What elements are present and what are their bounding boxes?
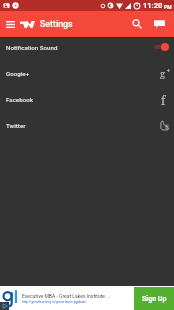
staticText: Facebook [6, 96, 33, 103]
button[interactable]: Sign Up [134, 287, 174, 310]
staticText: Settings [40, 19, 73, 29]
staticText: Google+ [6, 70, 30, 77]
staticText: http://greatlearning.in/great-lakes-pgpb… [22, 300, 86, 304]
staticText: Executive MBA - Great Lakes Institute ..… [22, 293, 111, 299]
button[interactable]: Notification Sound [0, 34, 174, 60]
button[interactable]: Executive MBA - Great Lakes Institute ..… [0, 286, 174, 310]
other: Ad choices [0, 302, 9, 310]
button[interactable]: Twitter [0, 112, 174, 138]
staticText: Twitter [6, 122, 26, 129]
button[interactable]: Search [126, 11, 148, 37]
button[interactable]: Messages [148, 11, 170, 37]
staticText: PM [164, 4, 172, 10]
button[interactable]: Open navigation drawer [0, 11, 20, 37]
staticText: 11:20 [143, 1, 163, 10]
staticText: Notification Sound [6, 44, 58, 51]
button[interactable]: Google+ [0, 60, 174, 86]
staticText: + [167, 67, 170, 73]
staticText: f [161, 92, 166, 106]
staticText: g [160, 67, 166, 80]
button[interactable]: Facebook [0, 86, 174, 112]
staticText: Sign Up [142, 295, 167, 303]
button[interactable]: Notification sound toggle [154, 41, 169, 53]
